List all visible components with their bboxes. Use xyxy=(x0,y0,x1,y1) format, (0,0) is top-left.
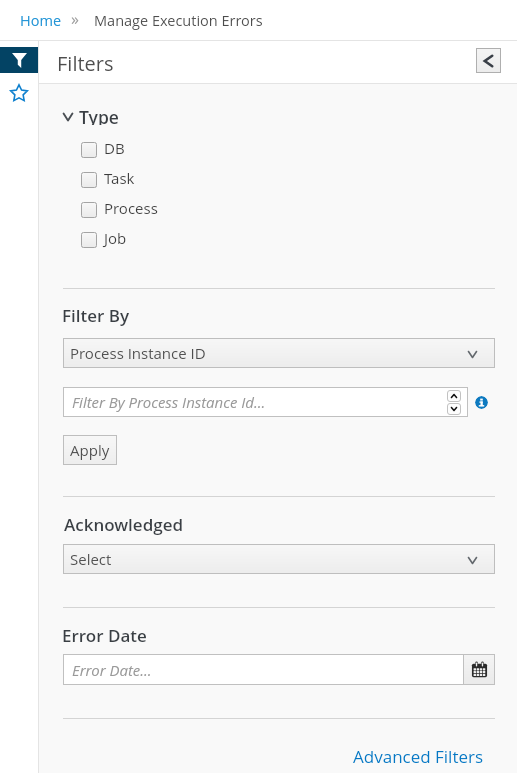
button[interactable]: Process xyxy=(63,197,495,222)
staticText: Filter By Process Instance Id... xyxy=(72,392,266,412)
button[interactable]: Information xyxy=(475,396,488,409)
staticText: Type xyxy=(79,105,119,125)
button[interactable]: DB xyxy=(63,137,495,162)
staticText: Select xyxy=(70,549,112,569)
staticText: » xyxy=(71,8,79,30)
staticText: Acknowledged xyxy=(64,513,184,536)
button[interactable]: Increment xyxy=(447,390,461,402)
button[interactable]: Favorites xyxy=(0,82,38,104)
staticText: Process xyxy=(104,198,158,218)
button[interactable]: Select xyxy=(63,544,495,574)
button[interactable]: Home xyxy=(20,11,62,31)
staticText: Task xyxy=(104,168,135,188)
button[interactable]: Job xyxy=(63,227,495,252)
button[interactable]: Error Date... xyxy=(63,654,463,685)
button[interactable]: Decrement xyxy=(447,403,461,415)
staticText: Manage Execution Errors xyxy=(94,11,263,31)
button[interactable]: Apply xyxy=(63,435,117,465)
staticText: Error Date xyxy=(62,624,147,647)
staticText: Error Date... xyxy=(72,660,152,680)
button[interactable]: Task xyxy=(63,167,495,192)
staticText: Apply xyxy=(70,440,110,460)
button[interactable]: Open date picker xyxy=(464,654,495,685)
button[interactable]: Advanced Filters xyxy=(350,742,487,771)
staticText: Process Instance ID xyxy=(70,343,206,363)
button[interactable]: Type xyxy=(63,105,119,125)
button[interactable]: Filter By Process Instance Id... xyxy=(63,387,468,417)
staticText: Advanced Filters xyxy=(353,745,484,768)
button[interactable]: Collapse filters panel xyxy=(476,48,501,73)
staticText: Filters xyxy=(57,50,114,77)
staticText: Job xyxy=(104,228,127,248)
button[interactable]: Process Instance ID xyxy=(63,338,495,368)
button[interactable]: Filters xyxy=(0,47,39,73)
staticText: Filter By xyxy=(62,304,130,327)
staticText: DB xyxy=(104,138,125,158)
